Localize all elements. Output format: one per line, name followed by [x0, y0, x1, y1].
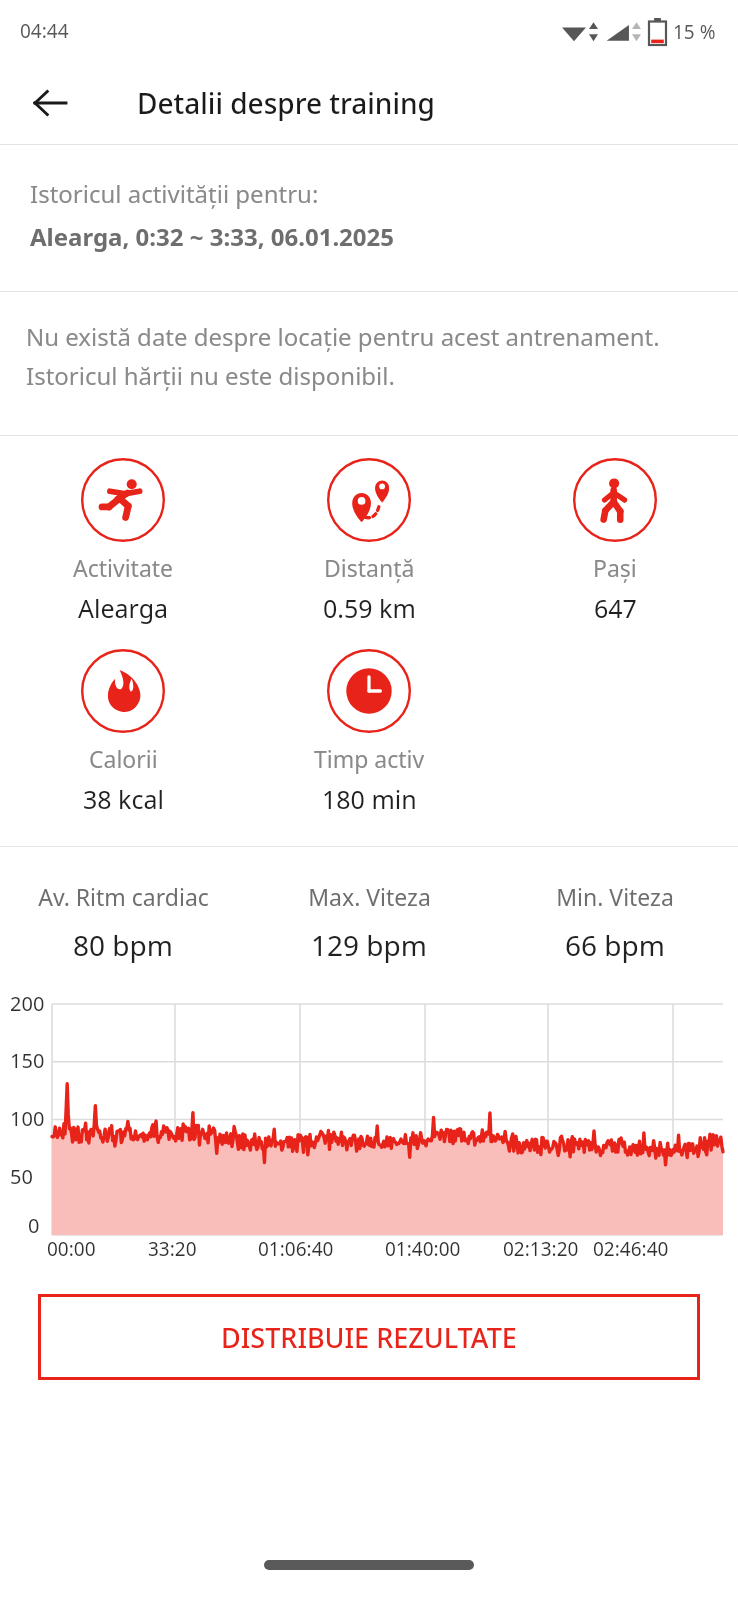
button[interactable]: Timp activ: [246, 649, 492, 816]
staticText: 02:13:20: [503, 1236, 579, 1262]
button[interactable]: Pași: [492, 458, 738, 625]
staticText: 180 min: [322, 782, 417, 816]
staticText: 02:46:40: [593, 1236, 669, 1262]
button[interactable]: Calorii: [0, 649, 246, 816]
staticText: Av. Ritm cardiac: [38, 881, 209, 912]
staticText: 15 %: [673, 19, 716, 45]
staticText: 0.59 km: [323, 591, 416, 625]
staticText: 0: [28, 1212, 40, 1239]
staticText: Timp activ: [314, 743, 425, 774]
staticText: Pași: [593, 552, 637, 583]
staticText: 129 bpm: [311, 926, 427, 964]
staticText: Max. Viteza: [308, 881, 431, 912]
button[interactable]: DISTRIBUIE REZULTATE: [38, 1294, 700, 1380]
staticText: 38 kcal: [83, 782, 164, 816]
staticText: Istoricul activității pentru:: [30, 177, 319, 210]
staticText: Alearga: [78, 591, 169, 625]
staticText: 647: [594, 591, 637, 625]
staticText: 80 bpm: [73, 926, 173, 964]
staticText: 04:44: [20, 18, 69, 44]
staticText: 01:40:00: [385, 1236, 461, 1262]
staticText: 100: [10, 1105, 45, 1132]
button[interactable]: Back: [22, 75, 78, 131]
staticText: DISTRIBUIE REZULTATE: [221, 1319, 517, 1356]
staticText: Detalii despre training: [137, 84, 435, 122]
staticText: 50: [10, 1163, 33, 1190]
staticText: 00:00: [47, 1236, 96, 1262]
button[interactable]: Activitate: [0, 458, 246, 625]
staticText: 01:06:40: [258, 1236, 334, 1262]
staticText: 200: [10, 990, 45, 1017]
staticText: 150: [10, 1047, 45, 1074]
staticText: Istoricul hărții nu este disponibil.: [26, 359, 395, 392]
staticText: Min. Viteza: [556, 881, 674, 912]
staticText: Distanță: [324, 552, 415, 583]
staticText: Activitate: [73, 552, 174, 583]
staticText: Calorii: [89, 743, 158, 774]
staticText: Alearga, 0:32 ~ 3:33, 06.01.2025: [30, 220, 395, 253]
staticText: 66 bpm: [565, 926, 665, 964]
staticText: Nu există date despre locație pentru ace…: [26, 320, 660, 353]
button[interactable]: Distanță: [246, 458, 492, 625]
staticText: 33:20: [148, 1236, 197, 1262]
